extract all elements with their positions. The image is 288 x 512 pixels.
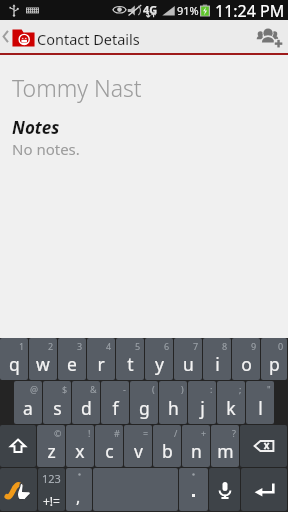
staticText: © — [54, 427, 62, 439]
button[interactable]: 2 — [29, 338, 57, 380]
staticText: , — [76, 486, 81, 508]
staticText: ) — [181, 383, 184, 395]
staticText: b — [162, 439, 173, 463]
button[interactable]: 6 — [145, 338, 173, 380]
staticText: i — [215, 352, 220, 376]
staticText: - — [123, 383, 126, 395]
staticText: + — [201, 427, 207, 439]
staticText: @ — [30, 383, 39, 395]
staticText: 6 — [164, 340, 170, 352]
staticText: / — [174, 427, 178, 439]
staticText: " — [267, 383, 271, 395]
button[interactable]: 4 — [87, 338, 115, 380]
other: Swype — [6, 479, 32, 501]
staticText: Notes — [12, 116, 60, 139]
staticText: 91% — [177, 3, 199, 18]
button[interactable]: / — [153, 425, 181, 467]
staticText: No notes. — [12, 139, 80, 159]
button[interactable]: + — [182, 425, 210, 467]
button[interactable]: Back — [0, 20, 39, 53]
button[interactable]: Delete — [240, 425, 287, 467]
other: Enter — [254, 482, 275, 498]
button[interactable]: 9 — [232, 338, 260, 380]
staticText: 0 — [278, 340, 284, 352]
staticText: a — [23, 396, 33, 420]
staticText: = — [143, 427, 149, 439]
button[interactable]: Voice input — [209, 468, 240, 511]
button[interactable]: # — [95, 425, 123, 467]
staticText: x — [75, 439, 85, 463]
button[interactable]: @ — [14, 381, 42, 424]
other: Shift — [10, 438, 26, 454]
staticText: 4G — [143, 2, 158, 17]
staticText: Tommy Nast — [12, 72, 142, 103]
staticText: +!= — [43, 493, 60, 509]
staticText: l — [258, 396, 263, 420]
button[interactable]: & — [72, 381, 100, 424]
staticText: o — [241, 352, 252, 376]
other: Back — [2, 30, 9, 43]
staticText: 5 — [135, 340, 141, 352]
staticText: 9 — [251, 340, 257, 352]
button[interactable]: 8 — [203, 338, 231, 380]
staticText: 3 — [77, 340, 83, 352]
staticText: f — [112, 396, 119, 420]
button[interactable]: 3 — [58, 338, 86, 380]
staticText: ; — [239, 383, 242, 395]
staticText: h — [168, 396, 179, 420]
button[interactable]: ( — [130, 381, 158, 424]
button[interactable]: , — [66, 468, 92, 511]
staticText: ? — [232, 427, 236, 439]
staticText: k — [226, 396, 236, 420]
staticText: Contact Details — [37, 29, 140, 49]
staticText: n — [191, 439, 202, 463]
button[interactable]: = — [124, 425, 152, 467]
staticText: : — [210, 383, 213, 395]
staticText: 2 — [48, 340, 54, 352]
staticText: z — [47, 439, 56, 463]
staticText: 1 — [19, 340, 25, 352]
staticText: p — [269, 352, 280, 376]
staticText: q — [9, 352, 20, 376]
staticText: j — [200, 396, 205, 420]
button[interactable]: Shift — [0, 425, 36, 467]
staticText: ( — [152, 383, 155, 395]
button[interactable]: 123 — [38, 468, 65, 511]
staticText: t — [127, 352, 134, 376]
staticText: y — [155, 352, 164, 376]
button[interactable]: ! — [66, 425, 94, 467]
button[interactable]: ; — [217, 381, 245, 424]
button[interactable] — [179, 468, 208, 511]
staticText: s — [53, 396, 62, 420]
button[interactable]: Enter — [241, 468, 287, 511]
button[interactable]: ? — [211, 425, 239, 467]
button[interactable]: 1 — [0, 338, 28, 380]
button[interactable]: Add to group — [252, 20, 288, 53]
staticText: v — [134, 439, 143, 463]
staticText: # — [114, 427, 120, 439]
button[interactable]: 0 — [261, 338, 287, 380]
staticText: $ — [62, 383, 68, 395]
staticText: 8 — [222, 340, 228, 352]
button[interactable]: : — [188, 381, 216, 424]
staticText: m — [217, 439, 234, 463]
staticText: 11:24 PM — [215, 0, 285, 20]
button[interactable]: 5 — [116, 338, 144, 380]
button[interactable]: 7 — [174, 338, 202, 380]
button[interactable]: - — [101, 381, 129, 424]
staticText: 7 — [193, 340, 199, 352]
staticText: d — [81, 396, 92, 420]
staticText: 4 — [106, 340, 112, 352]
button[interactable]: Swype — [0, 468, 37, 511]
button[interactable]: ) — [159, 381, 187, 424]
staticText: r — [97, 352, 105, 376]
staticText: g — [139, 396, 150, 420]
button[interactable]: © — [37, 425, 65, 467]
staticText: 123 — [42, 471, 61, 486]
other: Voice input — [216, 481, 234, 499]
staticText: ! — [88, 427, 91, 439]
staticText: w — [36, 352, 50, 376]
button[interactable]: " — [246, 381, 274, 424]
button[interactable]: $ — [43, 381, 71, 424]
